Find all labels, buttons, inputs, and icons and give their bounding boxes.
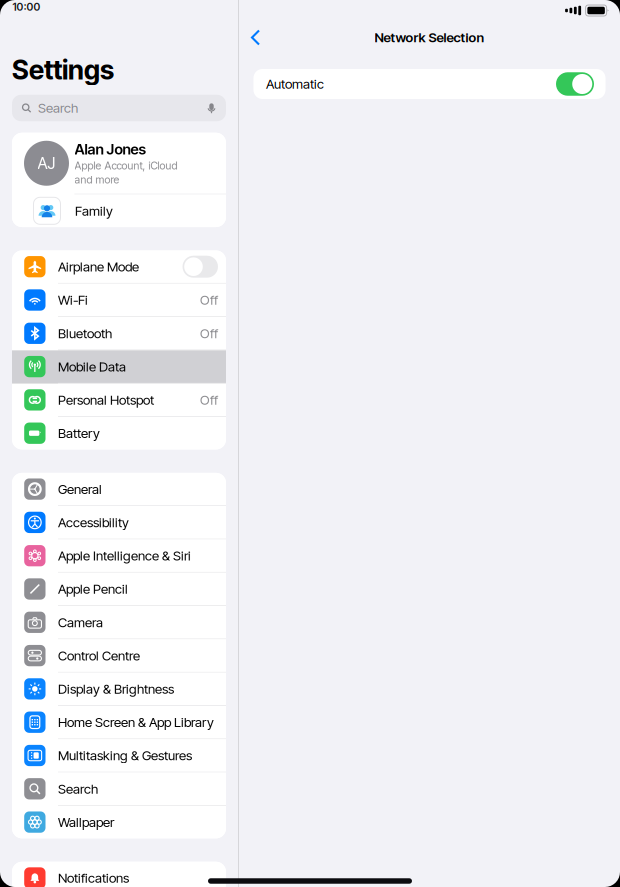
staticText: Settings [12, 54, 114, 85]
staticText: Mobile Data [58, 359, 126, 374]
button[interactable]: Apple Intelligence & Siri [12, 539, 226, 573]
staticText: Notifications [58, 870, 129, 886]
staticText: Wi-Fi [58, 292, 88, 308]
button[interactable]: Control Centre [12, 639, 226, 673]
button[interactable]: Accessibility [12, 506, 226, 539]
button[interactable]: Camera [12, 606, 226, 639]
button[interactable]: Notifications [12, 862, 226, 887]
button[interactable]: AJ [12, 133, 226, 194]
staticText: Camera [58, 614, 103, 630]
button[interactable]: General [12, 473, 226, 506]
staticText: Network Selection [374, 30, 484, 45]
staticText: and more [74, 173, 119, 186]
button[interactable]: Family [12, 195, 226, 227]
staticText: Alan Jones [74, 140, 145, 158]
button[interactable]: Search [12, 95, 226, 121]
staticText: Apple Account, iCloud [74, 159, 177, 172]
staticText: Search [58, 781, 98, 797]
staticText: Personal Hotspot [58, 392, 154, 408]
staticText: Home Screen & App Library [58, 714, 214, 730]
staticText: AJ [37, 154, 55, 173]
staticText: Display & Brightness [58, 681, 174, 697]
button[interactable]: Bluetooth [12, 317, 226, 350]
staticText: Apple Pencil [58, 581, 128, 597]
staticText: Bluetooth [58, 325, 112, 341]
button[interactable]: Multitasking & Gestures [12, 739, 226, 772]
button[interactable]: Home Screen & App Library [12, 706, 226, 739]
staticText: Off [200, 392, 218, 408]
button[interactable]: Back [242, 23, 270, 51]
staticText: Search [38, 100, 78, 116]
staticText: General [58, 481, 102, 497]
button[interactable]: Wallpaper [12, 806, 226, 838]
button[interactable]: Personal Hotspot [12, 384, 226, 417]
staticText: Multitasking & Gestures [58, 748, 192, 763]
button[interactable]: Mobile Data [12, 350, 226, 384]
staticText: Apple Intelligence & Siri [58, 548, 191, 563]
button[interactable]: Apple Pencil [12, 573, 226, 606]
staticText: Automatic [266, 76, 324, 92]
staticText: Airplane Mode [58, 259, 139, 274]
staticText: Family [75, 203, 113, 219]
button[interactable]: Airplane Mode [12, 250, 226, 283]
staticText: Control Centre [58, 648, 140, 663]
button[interactable]: Search [12, 773, 226, 806]
staticText: Off [200, 325, 218, 341]
button[interactable]: Wi-Fi [12, 284, 226, 317]
button[interactable]: Battery [12, 417, 226, 449]
staticText: Off [200, 292, 218, 308]
button[interactable]: Automatic [253, 69, 605, 99]
staticText: Battery [58, 425, 100, 441]
staticText: 10:00 [12, 0, 40, 13]
staticText: Wallpaper [58, 814, 114, 830]
button[interactable]: Display & Brightness [12, 673, 226, 706]
staticText: Accessibility [58, 514, 129, 530]
